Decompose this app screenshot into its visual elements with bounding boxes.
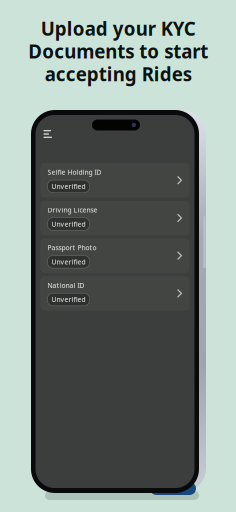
button[interactable]: Passport Photo (40, 238, 189, 273)
staticText: Driving License (47, 205, 97, 214)
staticText: accepting Rides (44, 62, 191, 86)
button[interactable]: Menu (35, 115, 58, 145)
staticText: Documents to start (28, 39, 208, 64)
staticText: Passport Photo (47, 243, 96, 252)
staticText: Unverified (51, 220, 85, 229)
staticText: Upload your KYC (40, 16, 195, 41)
staticText: Unverified (51, 257, 85, 266)
staticText: Unverified (51, 295, 85, 304)
button[interactable]: National ID (40, 276, 189, 311)
staticText: Unverified (51, 182, 85, 191)
button[interactable]: Selfie Holding ID (40, 163, 189, 197)
staticText: National ID (47, 281, 84, 290)
button[interactable]: Driving License (40, 201, 189, 235)
staticText: Selfie Holding ID (47, 168, 101, 177)
